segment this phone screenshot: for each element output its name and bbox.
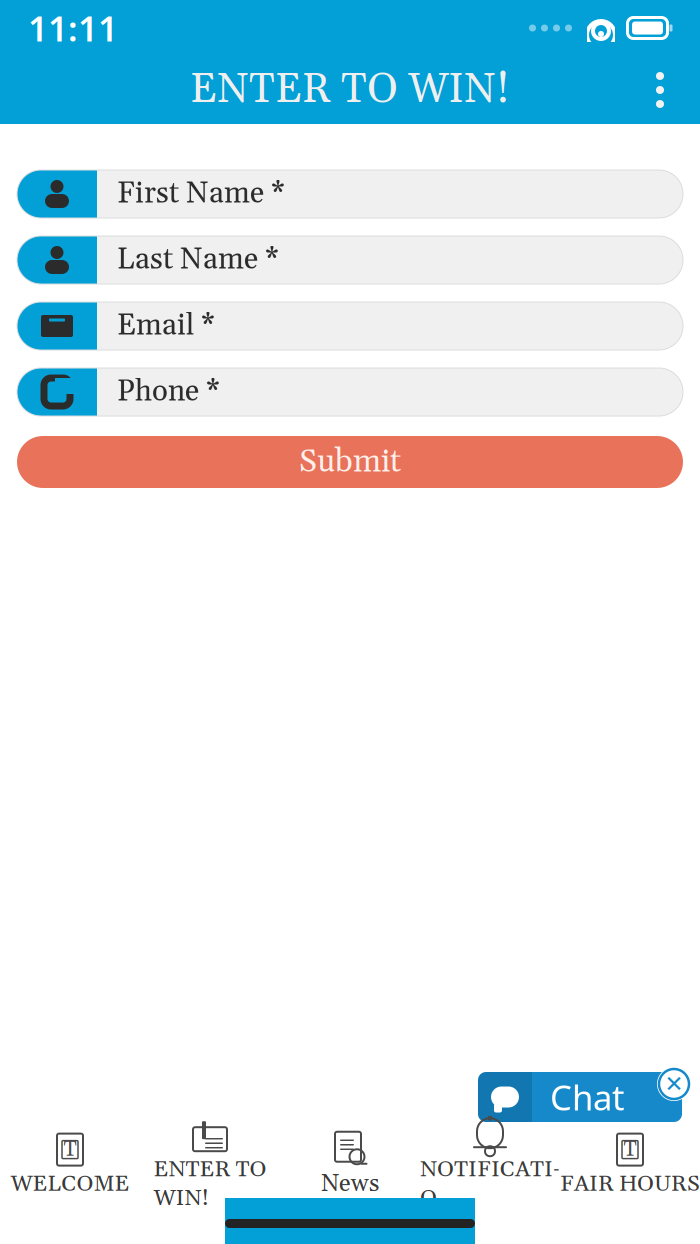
staticText: 11:11	[28, 5, 118, 51]
button[interactable]: Email *	[17, 302, 683, 350]
button[interactable]: T	[0, 1134, 140, 1196]
button[interactable]: Chat	[478, 1072, 682, 1122]
staticText: Submit	[299, 442, 401, 482]
staticText: T	[63, 1136, 76, 1163]
button[interactable]: Close chat	[654, 1064, 694, 1104]
button[interactable]: T	[560, 1134, 700, 1196]
staticText: Phone *	[117, 373, 220, 411]
staticText: NOTIFICATIO...	[420, 1155, 560, 1213]
staticText: Chat	[550, 1074, 625, 1120]
button[interactable]: NOTIFICATIO...	[420, 1134, 560, 1196]
staticText: First Name *	[117, 175, 285, 213]
staticText: ENTER TO WIN!	[153, 1155, 266, 1213]
staticText: ENTER TO WIN!	[190, 64, 510, 116]
staticText: News	[321, 1169, 379, 1199]
staticText: WELCOME	[10, 1170, 129, 1198]
button[interactable]: Submit	[17, 436, 683, 488]
button[interactable]: More options	[632, 58, 688, 122]
button[interactable]: First Name *	[17, 170, 683, 218]
staticText: ✕	[664, 1071, 683, 1097]
staticText: T	[623, 1136, 636, 1163]
staticText: Last Name *	[117, 241, 279, 279]
staticText: Email *	[117, 307, 215, 345]
button[interactable]: ENTER TO WIN!	[140, 1134, 280, 1196]
button[interactable]: Last Name *	[17, 236, 683, 284]
staticText: FAIR HOURS	[560, 1170, 700, 1198]
button[interactable]: News	[280, 1134, 420, 1196]
button[interactable]: Phone *	[17, 368, 683, 416]
